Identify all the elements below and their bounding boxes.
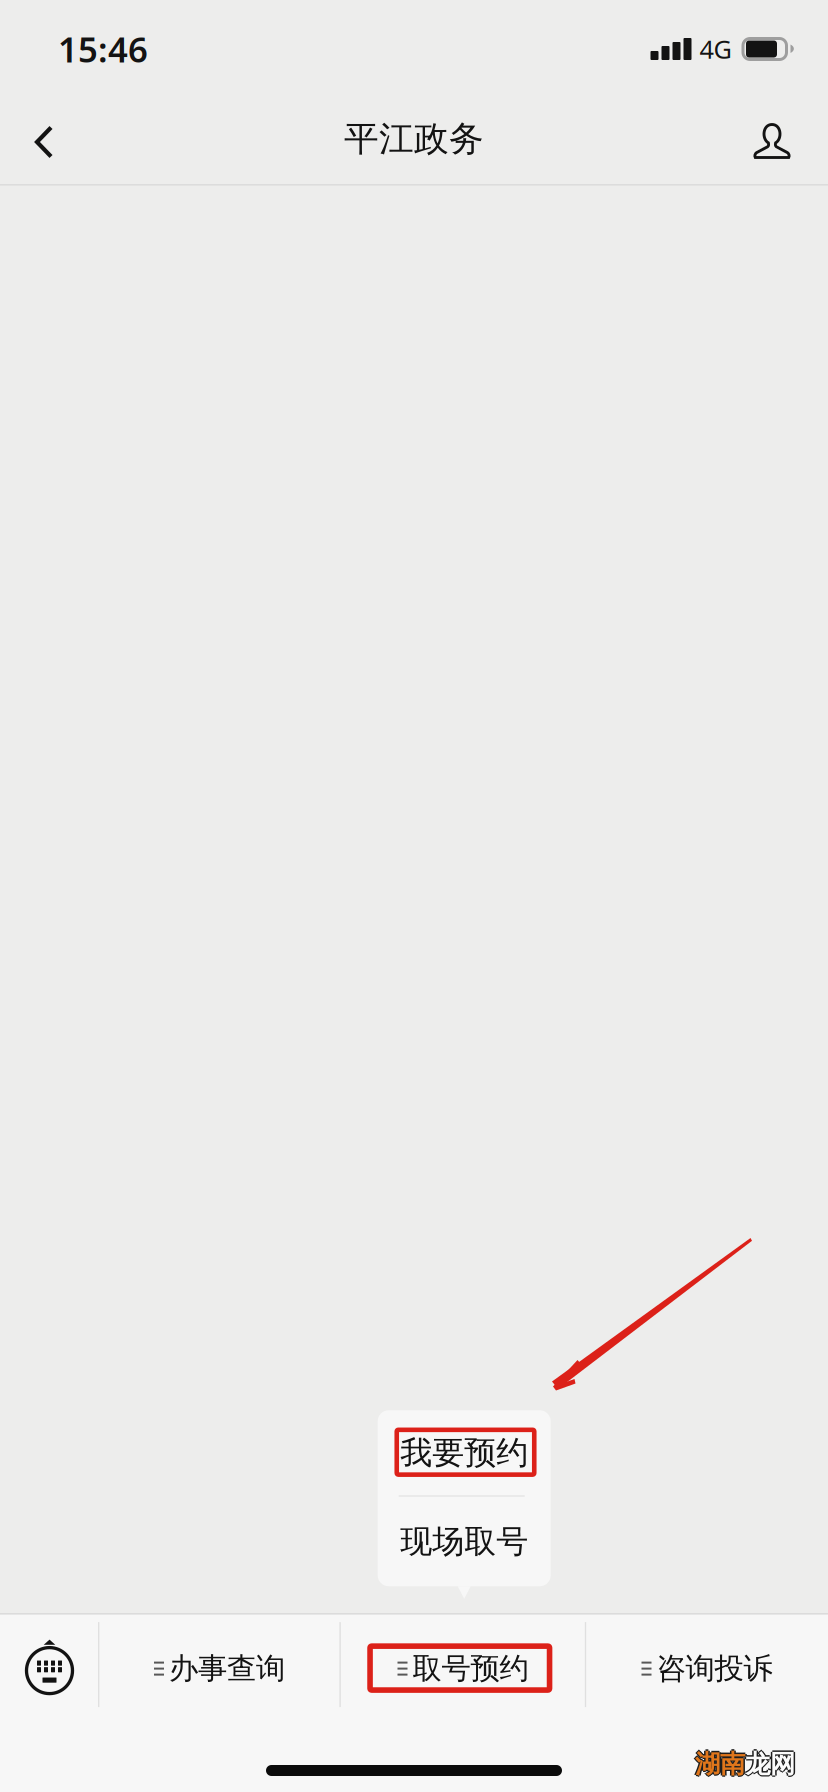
staticText: 咨询投诉 (656, 1651, 772, 1687)
staticText: 龙网 (746, 1748, 796, 1779)
button[interactable]: Keyboard (0, 1615, 99, 1715)
staticText: 办事查询 (169, 1651, 285, 1687)
button[interactable]: Profile (729, 98, 815, 184)
staticText: 湖南 (694, 1748, 744, 1779)
staticText: 龙网 (744, 1748, 794, 1779)
staticText: 平江政务 (344, 118, 484, 160)
staticText: 15:46 (58, 26, 148, 72)
staticText: 湖南 (695, 1750, 745, 1781)
button[interactable]: 现场取号 (378, 1497, 551, 1586)
staticText: 湖南 (695, 1748, 745, 1779)
button[interactable]: 办事查询 (99, 1615, 340, 1715)
button[interactable]: 我要预约 (378, 1410, 551, 1495)
staticText: 现场取号 (400, 1522, 528, 1561)
staticText: 湖南 (696, 1748, 746, 1779)
button[interactable]: Back (0, 98, 86, 184)
staticText: 湖南 (695, 1747, 745, 1778)
button[interactable]: 咨询投诉 (586, 1615, 828, 1715)
staticText: 龙网 (745, 1750, 795, 1781)
staticText: 4G (699, 32, 731, 66)
staticText: 龙网 (745, 1747, 795, 1778)
staticText: 取号预约 (412, 1651, 528, 1687)
staticText: 我要预约 (400, 1433, 528, 1472)
button[interactable]: 取号预约 (340, 1615, 586, 1715)
staticText: 龙网 (745, 1748, 795, 1779)
